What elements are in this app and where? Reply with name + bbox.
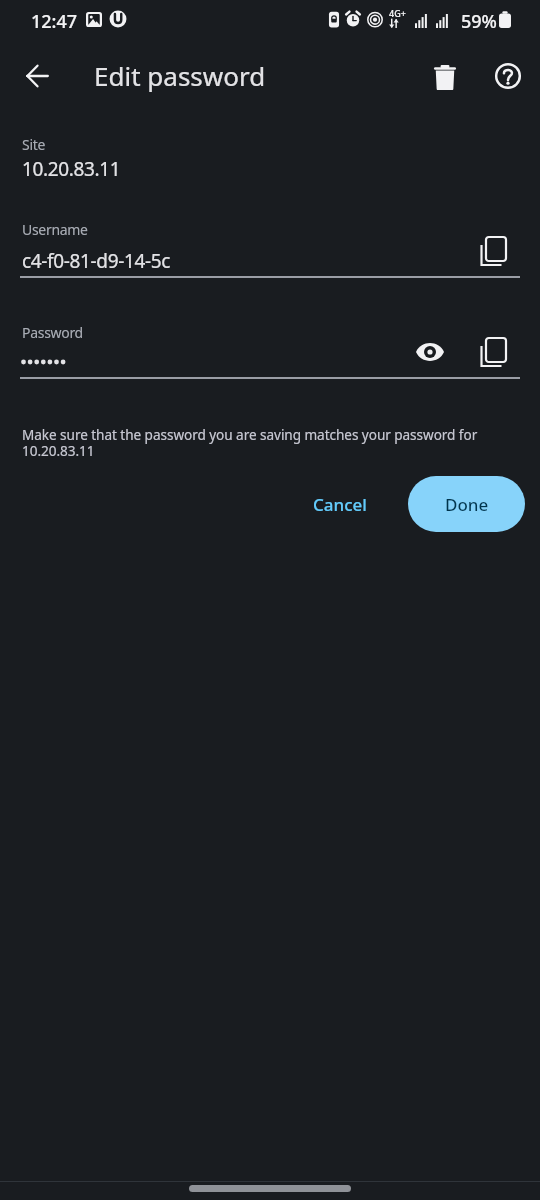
- button[interactable]: Done: [408, 476, 525, 532]
- button[interactable]: Password field: [20, 315, 520, 381]
- staticText: 4G+: [389, 7, 406, 19]
- staticText: Done: [445, 493, 489, 516]
- button[interactable]: Copy password: [471, 330, 515, 374]
- button[interactable]: Back: [13, 52, 61, 100]
- staticText: Cancel: [313, 493, 367, 516]
- button[interactable]: Username field: [20, 212, 520, 280]
- staticText: Password: [22, 323, 83, 342]
- button[interactable]: Copy username: [471, 229, 515, 273]
- staticText: 12:47: [31, 9, 78, 34]
- staticText: Make sure that the password you are savi…: [22, 425, 500, 460]
- button[interactable]: Delete: [421, 53, 469, 101]
- staticText: 10.20.83.11: [22, 156, 121, 182]
- staticText: Username: [22, 220, 88, 239]
- staticText: Site: [22, 135, 46, 154]
- button[interactable]: Help: [484, 52, 532, 100]
- button[interactable]: Cancel: [297, 480, 383, 528]
- staticText: Edit password: [94, 58, 266, 93]
- staticText: c4-f0-81-d9-14-5c: [22, 248, 171, 274]
- staticText: 59%: [461, 9, 497, 34]
- button[interactable]: Show password: [408, 330, 452, 374]
